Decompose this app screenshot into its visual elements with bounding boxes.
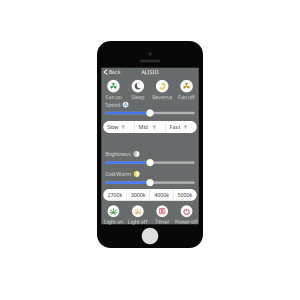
button[interactable]: 3000k: [127, 189, 150, 201]
staticText: Fast: [170, 123, 181, 131]
button[interactable]: 2700k: [103, 189, 127, 201]
staticText: 3000k: [131, 191, 146, 198]
staticText: Speed: [105, 101, 120, 108]
button[interactable]: Sleep: [126, 80, 150, 101]
button[interactable]: Back: [102, 67, 122, 77]
staticText: Reverse: [152, 94, 172, 101]
button[interactable]: Fan on: [101, 80, 126, 101]
button[interactable]: Timer: [150, 205, 174, 225]
staticText: Timer: [155, 218, 169, 225]
staticText: ALISIO: [141, 69, 158, 76]
button[interactable]: Slow: [103, 121, 134, 133]
staticText: 2700k: [107, 191, 122, 198]
button[interactable]: Fast: [166, 121, 197, 133]
staticText: Light on: [104, 218, 123, 225]
button[interactable]: 5000k: [173, 189, 197, 201]
staticText: Sleep: [131, 94, 144, 101]
staticText: 5000k: [178, 191, 193, 198]
button[interactable]: Light on: [101, 205, 126, 225]
button[interactable]: 4000k: [150, 189, 173, 201]
staticText: Mid: [138, 123, 147, 131]
button[interactable]: Power off: [174, 205, 199, 225]
button[interactable]: Reverse: [150, 80, 174, 101]
button[interactable]: Light off: [126, 205, 150, 225]
staticText: Fan off: [178, 94, 195, 101]
staticText: Light off: [128, 218, 148, 225]
staticText: 4000k: [154, 191, 169, 198]
staticText: Slow: [107, 123, 118, 131]
button[interactable]: Fan off: [174, 80, 199, 101]
staticText: Power off: [175, 218, 198, 225]
staticText: Fan on: [105, 94, 121, 101]
staticText: Brightness: [105, 150, 131, 158]
button[interactable]: Mid: [134, 121, 166, 133]
staticText: Back: [109, 68, 121, 76]
staticText: Cold Warm: [105, 170, 131, 178]
